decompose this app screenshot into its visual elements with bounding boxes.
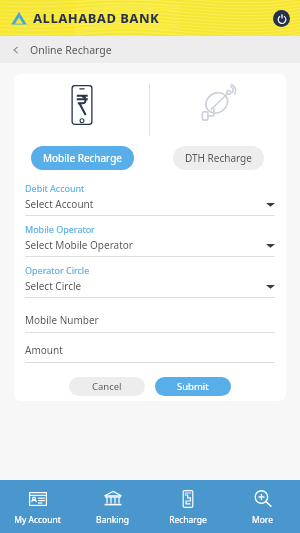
button[interactable]: My Account bbox=[0, 480, 75, 533]
staticText: Submit bbox=[177, 380, 209, 393]
other: Banking bbox=[103, 489, 123, 509]
button[interactable]: Operator Circle bbox=[25, 264, 275, 305]
staticText: My Account bbox=[14, 514, 61, 526]
other: More bbox=[253, 489, 273, 509]
staticText: Online Recharge bbox=[30, 43, 112, 57]
button[interactable]: Debit Account bbox=[25, 182, 275, 223]
staticText: ALLAHABAD BANK bbox=[33, 9, 160, 27]
button[interactable]: Submit bbox=[155, 377, 231, 396]
staticText: Mobile Number bbox=[25, 313, 99, 327]
staticText: DTH Recharge bbox=[185, 151, 252, 165]
staticText: Operator Circle bbox=[25, 264, 90, 276]
staticText: Mobile Recharge bbox=[43, 151, 122, 165]
staticText: Banking bbox=[96, 514, 129, 526]
button[interactable]: Back bbox=[0, 36, 300, 63]
staticText: Amount bbox=[25, 343, 63, 357]
staticText: Select Mobile Operator bbox=[25, 238, 133, 252]
staticText: Select Circle bbox=[25, 279, 82, 293]
button[interactable]: More bbox=[225, 480, 300, 533]
other: Back bbox=[11, 45, 21, 55]
button[interactable]: Mobile Operator bbox=[25, 223, 275, 264]
other: Recharge bbox=[178, 489, 198, 509]
button[interactable]: Logout bbox=[273, 10, 290, 27]
staticText: Mobile Operator bbox=[25, 223, 95, 235]
staticText: Cancel bbox=[92, 380, 122, 393]
button[interactable]: Recharge bbox=[150, 480, 225, 533]
staticText: More bbox=[252, 514, 273, 526]
staticText: Select Account bbox=[25, 197, 94, 211]
button[interactable]: Amount bbox=[25, 343, 275, 363]
other: My Account bbox=[28, 489, 48, 509]
button[interactable]: Mobile Number bbox=[25, 313, 275, 333]
button[interactable]: Banking bbox=[75, 480, 150, 533]
staticText: Debit Account bbox=[25, 182, 85, 194]
button[interactable]: DTH Recharge bbox=[173, 146, 264, 170]
staticText: Recharge bbox=[169, 514, 207, 526]
button[interactable]: Mobile Recharge bbox=[31, 146, 134, 170]
button[interactable]: Cancel bbox=[69, 377, 145, 396]
